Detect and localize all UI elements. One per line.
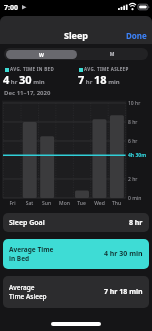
staticText: Dec 11–17, 2020 [4,89,51,97]
staticText: 8 hr [128,119,138,126]
staticText: 7 hr 18 min [78,72,120,87]
staticText: in Bed [9,254,30,263]
button[interactable]: Done [126,16,152,27]
staticText: Average Time [9,245,54,254]
staticText: 7:00 [4,3,18,13]
staticText: W [6,52,77,59]
staticText: Tue [73,200,90,207]
staticText: Thu [108,200,125,207]
staticText: Done [126,30,147,41]
staticText: Sun [38,200,55,207]
staticText: 4h 30m [128,152,147,159]
staticText: 0 min [128,195,142,202]
staticText: 4 hr 30 min [104,249,143,259]
button[interactable]: Sleep Goal [3,213,149,232]
staticText: 10 hr [128,100,141,107]
staticText: Mon [56,200,73,207]
staticText: AVG. TIME ASLEEP [84,66,129,72]
button[interactable]: Average Time [3,239,149,269]
button[interactable]: Average [3,276,149,308]
staticText: Time Asleep [9,292,47,301]
staticText: Sleep [0,29,152,41]
staticText: Average [9,283,35,292]
staticText: Sat [21,200,38,207]
button[interactable]: W [6,50,77,59]
staticText: Sleep Goal [9,218,45,228]
staticText: 2 hr [128,176,138,183]
staticText: AVG. TIME IN BED [10,66,54,72]
staticText: Wed [91,200,108,207]
button[interactable]: M [76,48,148,60]
staticText: Fri [4,200,21,207]
staticText: 6 hr [128,138,138,145]
staticText: 7 hr 18 min [104,287,143,297]
staticText: 8 hr [129,218,143,228]
staticText: 4 hr 30 min [3,72,45,87]
staticText: M [76,51,148,58]
